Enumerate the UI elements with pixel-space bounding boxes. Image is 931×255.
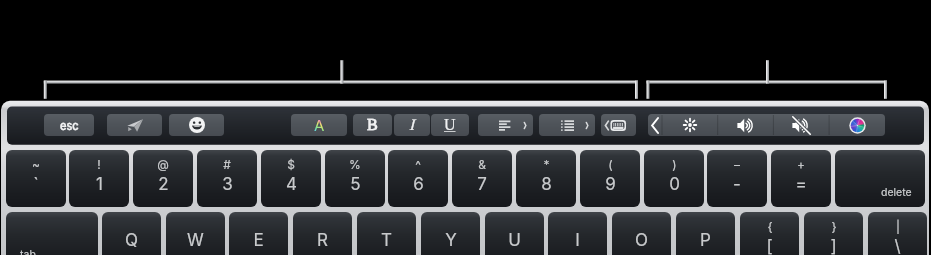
button[interactable]: E — [229, 212, 288, 255]
button[interactable]: Siri — [829, 114, 885, 136]
button[interactable]: Send — [107, 114, 162, 136]
button[interactable]: W — [166, 212, 225, 255]
staticText: | — [896, 219, 900, 234]
button[interactable]: ( — [580, 150, 640, 207]
staticText: ] — [830, 236, 837, 255]
staticText: 1 — [96, 174, 103, 195]
button[interactable]: B — [353, 114, 392, 136]
button[interactable]: Volume — [718, 114, 774, 136]
button[interactable]: | — [868, 212, 927, 255]
button[interactable]: Expand Control Strip — [648, 114, 662, 136]
button[interactable]: T — [357, 212, 416, 255]
button[interactable]: ^ — [388, 150, 448, 207]
button[interactable]: U — [485, 212, 544, 255]
staticText: A — [314, 116, 325, 134]
staticText: # — [223, 157, 231, 172]
staticText: @ — [157, 157, 169, 172]
button[interactable]: Alignment — [478, 114, 533, 136]
staticText: R — [317, 230, 328, 251]
button[interactable]: O — [612, 212, 671, 255]
button[interactable]: Text colour — [291, 114, 347, 136]
button[interactable]: R — [293, 212, 352, 255]
staticText: + — [797, 157, 805, 172]
staticText: Y — [445, 230, 457, 251]
button[interactable]: U — [431, 114, 469, 136]
button[interactable]: $ — [261, 150, 321, 207]
button[interactable]: ! — [69, 150, 129, 207]
staticText: 2 — [158, 174, 169, 195]
staticText: - — [733, 174, 741, 195]
staticText: ( — [608, 157, 613, 172]
staticText: I — [575, 230, 580, 251]
button[interactable]: Q — [102, 212, 161, 255]
staticText: % — [349, 157, 361, 172]
staticText: B — [367, 116, 378, 134]
button[interactable]: ~ — [6, 150, 66, 207]
staticText: 3 — [222, 174, 233, 195]
button[interactable]: delete — [835, 150, 925, 207]
staticText: O — [635, 230, 648, 251]
button[interactable]: Mute — [773, 114, 829, 136]
staticText: 7 — [477, 174, 487, 195]
staticText: 4 — [286, 174, 297, 195]
staticText: ~ — [32, 157, 40, 172]
button[interactable]: @ — [133, 150, 193, 207]
button[interactable]: tab — [6, 212, 98, 255]
staticText: 0 — [669, 174, 680, 195]
staticText: * — [543, 157, 550, 172]
button[interactable]: # — [197, 150, 257, 207]
staticText: esc — [60, 119, 79, 132]
staticText: ) — [672, 157, 677, 172]
button[interactable]: ) — [644, 150, 704, 207]
staticText: ` — [33, 174, 39, 195]
staticText: 5 — [350, 174, 361, 195]
staticText: \ — [894, 236, 901, 255]
button[interactable]: I — [548, 212, 607, 255]
staticText: delete — [881, 186, 912, 199]
button[interactable]: { — [740, 212, 799, 255]
button[interactable]: % — [325, 150, 385, 207]
staticText: Q — [125, 230, 138, 251]
staticText: E — [253, 230, 264, 251]
button[interactable]: & — [452, 150, 512, 207]
staticText: ^ — [415, 157, 421, 172]
staticText: – — [734, 157, 740, 172]
button[interactable]: Emoji — [169, 114, 224, 136]
staticText: { — [767, 219, 773, 234]
staticText: T — [381, 230, 392, 251]
button[interactable]: esc — [44, 114, 94, 136]
button[interactable]: * — [516, 150, 576, 207]
staticText: P — [700, 230, 711, 251]
staticText: [ — [766, 236, 773, 255]
staticText: I — [409, 116, 415, 134]
button[interactable]: I — [394, 114, 430, 136]
staticText: & — [478, 157, 486, 172]
button[interactable]: Keyboard — [601, 114, 636, 136]
button[interactable]: Lists — [539, 114, 595, 136]
staticText: $ — [287, 157, 295, 172]
button[interactable]: + — [771, 150, 831, 207]
staticText: ! — [97, 157, 101, 172]
button[interactable]: – — [707, 150, 767, 207]
button[interactable]: Brightness — [662, 114, 718, 136]
staticText: } — [831, 219, 837, 234]
button[interactable]: Y — [421, 212, 480, 255]
staticText: U — [508, 230, 521, 251]
button[interactable]: } — [804, 212, 863, 255]
staticText: 6 — [413, 174, 424, 195]
staticText: = — [795, 174, 807, 195]
staticText: W — [187, 230, 204, 251]
staticText: tab — [20, 248, 36, 255]
staticText: 8 — [541, 174, 552, 195]
staticText: 9 — [605, 174, 616, 195]
button[interactable]: P — [676, 212, 735, 255]
staticText: U — [444, 116, 456, 134]
